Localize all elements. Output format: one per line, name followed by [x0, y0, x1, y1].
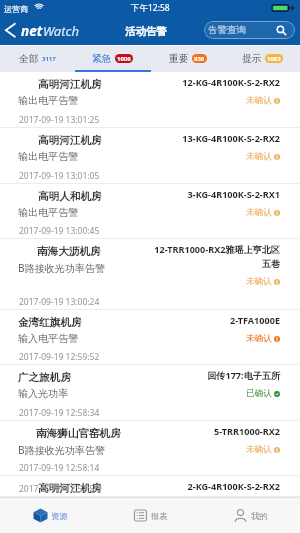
staticText: 输出电平告警 [18, 498, 79, 511]
staticText: 告警查询 [208, 24, 246, 36]
staticText: net [21, 22, 43, 40]
staticText: 高明河江机房 [38, 78, 102, 91]
staticText: 未确认 [246, 333, 272, 344]
staticText: 12-KG-4R100K-S-2-RX2 [182, 76, 280, 88]
staticText: 5-TRR1000-RX2 [214, 425, 280, 437]
staticText: 金湾红旗机房 [18, 316, 82, 329]
staticText: 紧急 [92, 53, 112, 65]
staticText: 3-KG-4R100K-S-2-RX1 [187, 188, 280, 200]
staticText: 报表 [151, 511, 168, 521]
staticText: 高明河江机房 [38, 482, 102, 495]
staticText: 运营商 [4, 4, 28, 14]
button[interactable]: 报表 [100, 498, 200, 533]
staticText: 2017-09-19 12:58:34 [19, 407, 100, 419]
staticText: 提示 [242, 53, 262, 65]
staticText: 未确认 [246, 151, 272, 162]
button[interactable]: 资源 [0, 498, 100, 533]
staticText: 2017-09-19 13:01:25 [19, 114, 100, 126]
staticText: 高明人和机房 [38, 190, 102, 203]
button[interactable]: 南海狮山官窑机房 [0, 421, 300, 476]
button[interactable]: 南海大沥机房 [0, 239, 300, 310]
staticText: 回传177:电子五所 [207, 369, 280, 381]
button[interactable]: 高明人和机房 [0, 184, 300, 239]
staticText: 高明河江机房 [38, 134, 102, 147]
staticText: 我的 [251, 511, 268, 521]
staticText: 未确认 [246, 444, 272, 455]
staticText: 资源 [51, 511, 68, 521]
staticText: 2017-09-19 12:59:52 [19, 351, 100, 363]
button[interactable]: 告警查询 [204, 21, 295, 39]
staticText: 活动告警 [125, 25, 167, 38]
staticText: 未确认 [246, 207, 272, 218]
staticText: B路接收光功率告警 [18, 443, 106, 457]
staticText: 936 [194, 55, 205, 63]
staticText: 输入光功率 [18, 387, 69, 400]
button[interactable]: 高明河江机房 [0, 72, 300, 128]
staticText: 南海狮山官窑机房 [36, 427, 121, 440]
staticText: Watch [43, 22, 79, 40]
staticText: 2-KG-4R100K-S-2-RX2 [187, 480, 280, 492]
staticText: 2017-09-19 12:58:14 [19, 462, 100, 474]
staticText: 12-TRR1000-RX2雅瑶上亨北区 [154, 243, 280, 255]
staticText: 全部 [19, 53, 39, 65]
staticText: 2017-09-19 13:01:05 [19, 170, 100, 182]
staticText: 2017-09-19 13:00:24 [19, 296, 100, 308]
staticText: 未确认 [246, 276, 272, 287]
staticText: 重要 [169, 53, 189, 65]
button[interactable]: 我的 [200, 498, 300, 533]
staticText: 1006 [117, 55, 131, 63]
button[interactable]: 全部 [0, 45, 75, 72]
staticText: 1083 [267, 55, 281, 63]
button[interactable]: 高明河江机房 [0, 476, 300, 497]
staticText: 13-KG-4R100K-S-2-RX2 [182, 132, 280, 144]
staticText: 已确认 [246, 388, 272, 399]
staticText: 输出电平告警 [18, 206, 79, 219]
staticText: B路接收光功率告警 [18, 261, 106, 275]
button[interactable]: 金湾红旗机房 [0, 310, 300, 365]
button[interactable]: Back [0, 17, 20, 45]
staticText: 广之旅机房 [18, 371, 71, 384]
staticText: 五巷 [261, 258, 280, 269]
staticText: 2-TFA1000E [230, 314, 280, 326]
button[interactable]: 紧急 [75, 45, 150, 72]
staticText: 下午12:58 [131, 2, 170, 14]
button[interactable]: 提示 [225, 45, 300, 72]
button[interactable]: 广之旅机房 [0, 365, 300, 421]
staticText: 输入电平告警 [18, 332, 79, 345]
staticText: 2017-09-19 12:57:54 [19, 483, 100, 495]
staticText: 南海大沥机房 [37, 245, 101, 258]
staticText: 输出电平告警 [18, 94, 79, 107]
staticText: 3117 [42, 55, 56, 63]
button[interactable]: 重要 [150, 45, 225, 72]
button[interactable]: 高明河江机房 [0, 128, 300, 184]
staticText: 2017-09-19 13:00:45 [19, 225, 100, 237]
staticText: 未确认 [246, 95, 272, 106]
staticText: 输出电平告警 [18, 150, 79, 163]
